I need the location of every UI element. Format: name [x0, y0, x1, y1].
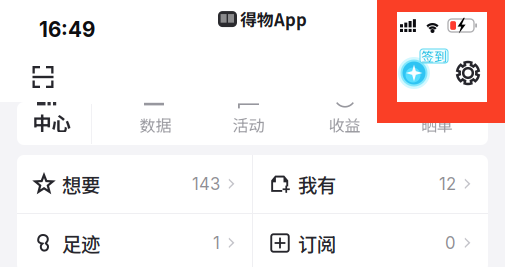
button[interactable]: 订阅 — [253, 214, 488, 267]
staticText: 数据 — [139, 113, 171, 136]
staticText: 活动 — [232, 113, 264, 136]
staticText: 16:49 — [39, 17, 95, 42]
button[interactable]: 收益 — [307, 102, 381, 145]
button[interactable]: 中心 — [14, 102, 88, 145]
staticText: 得物App — [240, 7, 307, 31]
button[interactable]: 想要 — [17, 155, 252, 213]
staticText: 签到 — [421, 47, 447, 65]
button[interactable]: 足迹 — [17, 214, 252, 267]
staticText: 足迹 — [62, 229, 100, 257]
staticText: 收益 — [328, 113, 360, 136]
staticText: 晒单 — [421, 113, 453, 136]
button[interactable]: 我有 — [253, 155, 488, 213]
staticText: 1 — [213, 233, 220, 253]
staticText: 订阅 — [298, 229, 336, 257]
button[interactable]: Settings — [454, 59, 482, 87]
staticText: 中心 — [32, 108, 70, 136]
staticText: 0 — [445, 233, 456, 253]
button[interactable]: 数据 — [118, 102, 192, 145]
staticText: 想要 — [62, 170, 100, 198]
staticText: 143 — [192, 174, 220, 194]
button[interactable]: 签到 — [398, 57, 430, 89]
button[interactable]: Scan — [26, 60, 60, 94]
staticText: 我有 — [298, 170, 336, 198]
staticText: 12 — [439, 174, 456, 194]
button[interactable]: 活动 — [211, 102, 285, 145]
button[interactable]: 晒单 — [400, 102, 474, 145]
